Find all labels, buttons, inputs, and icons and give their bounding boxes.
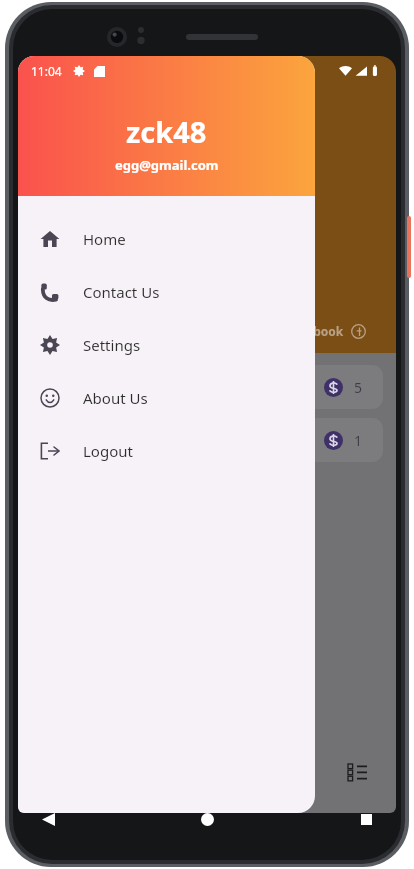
button[interactable]: Facebook [286,323,366,339]
staticText: Settings [83,335,141,355]
button[interactable]: 1 [31,418,383,462]
staticText: 5 [354,378,363,397]
button[interactable]: Settings [18,318,315,371]
button[interactable]: About Us [18,371,315,424]
staticText: Contact Us [83,282,160,302]
staticText: Home [83,229,126,249]
staticText: 11:04 [31,63,62,79]
button[interactable]: Back [30,801,66,837]
button[interactable]: Home [18,212,315,265]
staticText: zck48 [126,112,207,151]
button[interactable]: Contact Us [18,265,315,318]
button[interactable]: Home [189,801,225,837]
staticText: egg@gmail.com [115,156,219,174]
staticText: 1 [354,431,363,450]
staticText: About Us [83,388,148,408]
button[interactable]: 5 [31,365,383,409]
button[interactable]: Recent apps [348,801,384,837]
button[interactable]: List [340,755,374,789]
button[interactable]: Logout [18,424,315,477]
staticText: Logout [83,441,133,461]
staticText: Facebook [286,323,344,339]
